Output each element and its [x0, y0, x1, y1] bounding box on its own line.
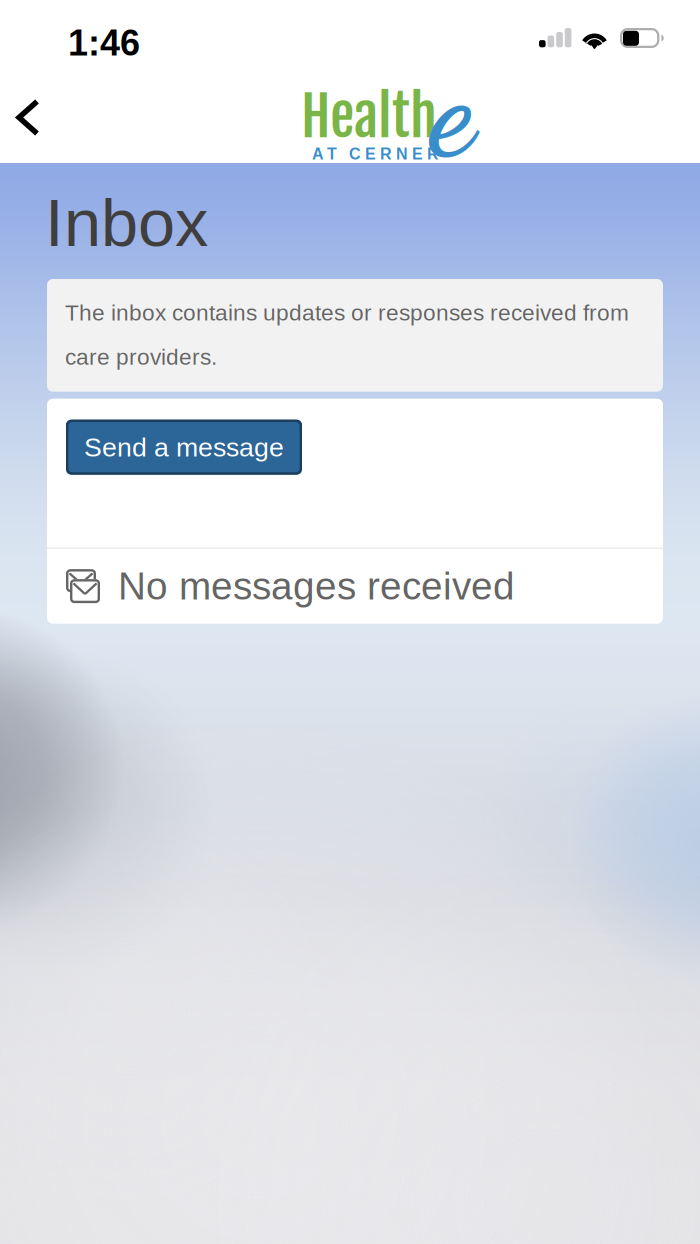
staticText: Send a message: [84, 432, 284, 462]
staticText: 1:46: [68, 23, 140, 63]
button[interactable]: Send a message: [66, 420, 302, 475]
staticText: Health: [301, 82, 437, 151]
staticText: No messages received: [118, 564, 515, 608]
staticText: e: [431, 35, 474, 187]
button[interactable]: Back: [0, 72, 63, 162]
staticText: Inbox: [45, 186, 208, 260]
staticText: The inbox contains updates or responses …: [65, 300, 629, 370]
staticText: A T C E R N E R: [312, 145, 439, 163]
